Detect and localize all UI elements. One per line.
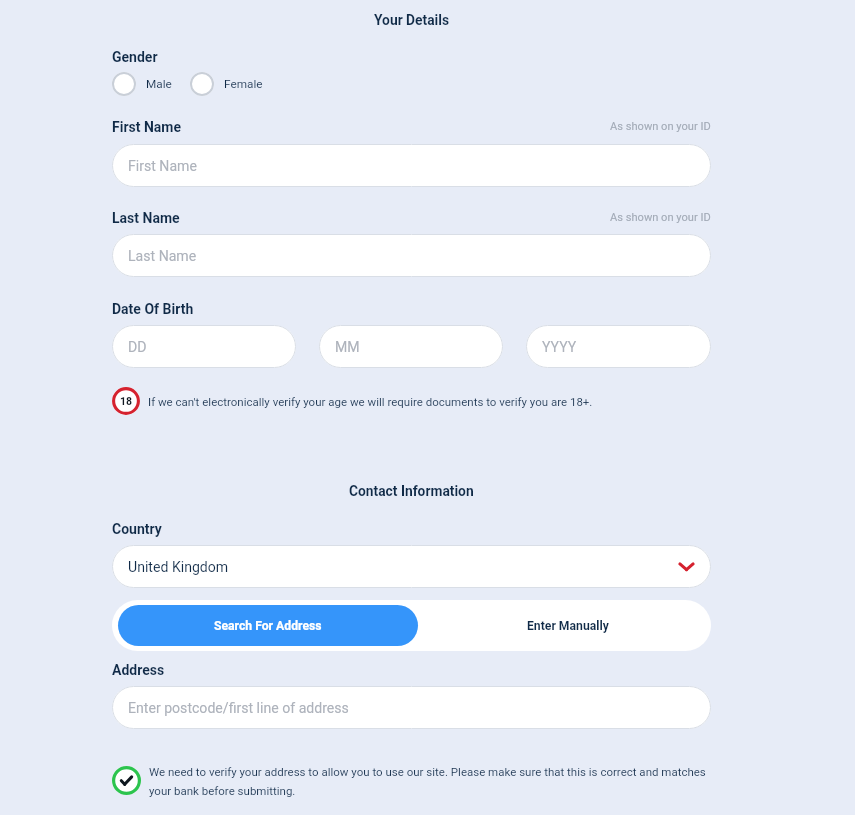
staticText: Gender (112, 49, 158, 65)
staticText: First Name (112, 119, 182, 135)
button[interactable]: MM (319, 325, 503, 368)
staticText: Male (146, 77, 172, 91)
staticText: Female (224, 77, 263, 91)
button[interactable]: DD (112, 325, 296, 368)
button[interactable]: Female (190, 72, 263, 96)
button[interactable]: Country: United Kingdom (112, 545, 711, 588)
staticText: First Name (128, 158, 197, 175)
button[interactable]: Enter Manually (425, 600, 711, 651)
staticText: Enter Manually (527, 619, 609, 633)
staticText: Address (112, 662, 165, 678)
button[interactable]: Male (112, 72, 172, 96)
button[interactable]: Last Name (112, 234, 711, 277)
staticText: Enter postcode/first line of address (128, 700, 349, 717)
staticText: We need to verify your address to allow … (149, 765, 715, 798)
staticText: YYYY (542, 339, 577, 356)
staticText: Date Of Birth (112, 301, 194, 317)
staticText: Last Name (112, 210, 180, 226)
staticText: If we can't electronically verify your a… (148, 395, 593, 408)
staticText: MM (335, 339, 360, 356)
staticText: Search For Address (214, 619, 322, 633)
staticText: United Kingdom (128, 559, 229, 576)
staticText: As shown on your ID (610, 211, 711, 224)
staticText: 18 (120, 395, 133, 407)
button[interactable]: Search For Address (118, 605, 418, 646)
staticText: Country (112, 521, 162, 537)
button[interactable]: First Name (112, 144, 711, 187)
staticText: Your Details (374, 12, 450, 28)
staticText: DD (128, 339, 147, 356)
staticText: As shown on your ID (610, 120, 711, 133)
staticText: Contact Information (349, 483, 474, 499)
staticText: Last Name (128, 248, 197, 265)
button[interactable]: Enter postcode/first line of address (112, 686, 711, 729)
button[interactable]: YYYY (526, 325, 711, 368)
